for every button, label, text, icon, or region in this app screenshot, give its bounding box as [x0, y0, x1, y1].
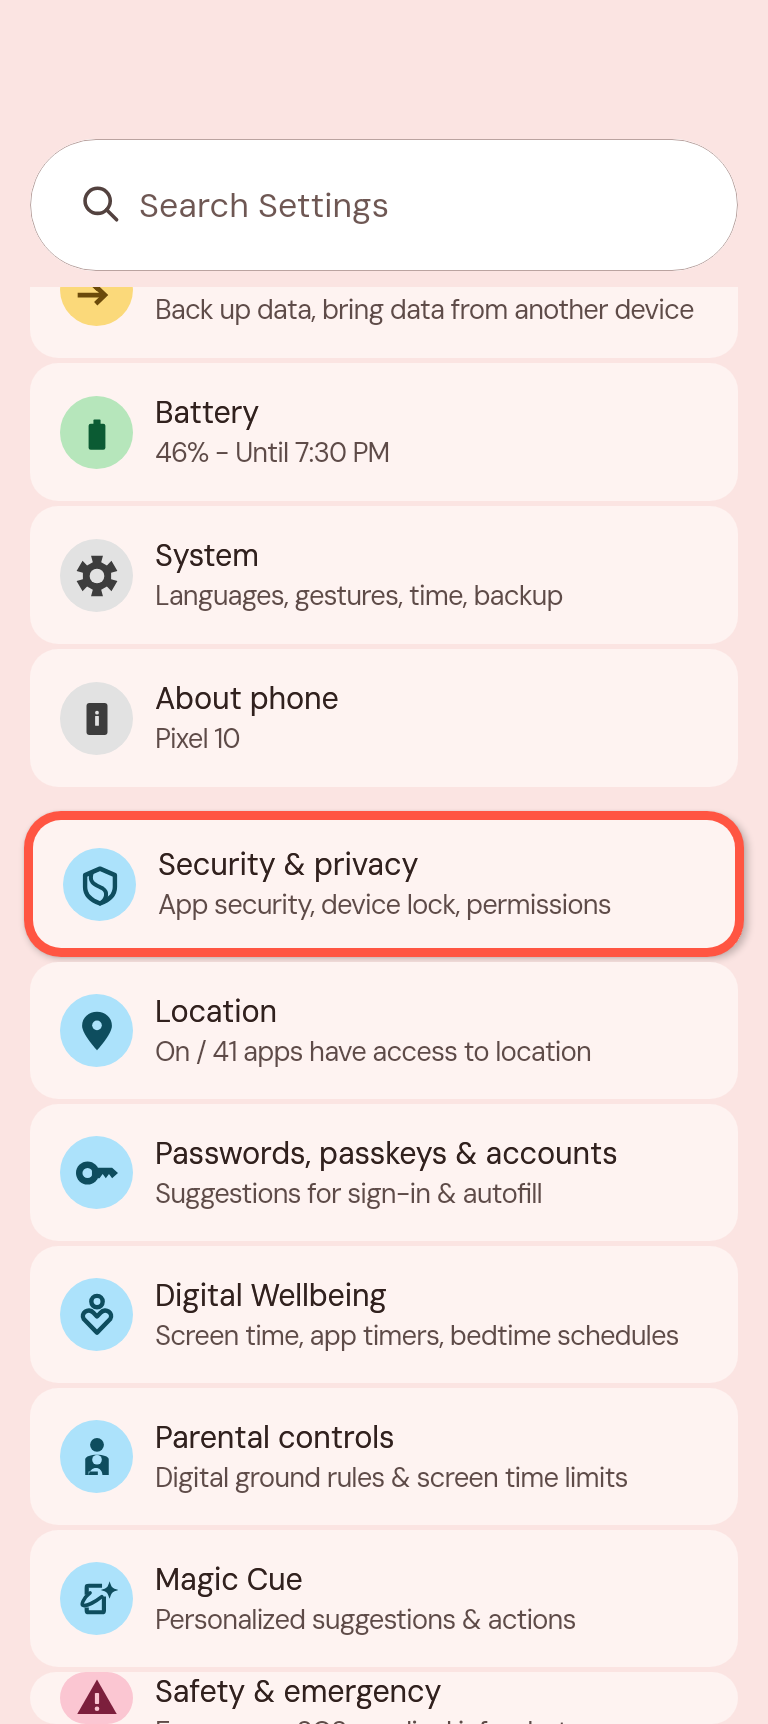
- staticText: Battery: [155, 393, 260, 433]
- staticText: Magic Cue: [155, 1560, 303, 1600]
- button[interactable]: Search Settings: [30, 139, 738, 271]
- staticText: App security, device lock, permissions: [158, 887, 611, 923]
- staticText: About phone: [155, 679, 339, 719]
- staticText: Location: [155, 992, 277, 1032]
- staticText: Backup & transfer: [155, 250, 410, 290]
- staticText: Screen time, app timers, bedtime schedul…: [155, 1318, 679, 1354]
- staticText: On / 41 apps have access to location: [155, 1034, 591, 1070]
- staticText: Suggestions for sign-in & autofill: [155, 1176, 542, 1212]
- staticText: Safety & emergency: [155, 1672, 442, 1712]
- button[interactable]: System: [30, 506, 738, 644]
- button[interactable]: Location: [30, 962, 738, 1099]
- staticText: Parental controls: [155, 1418, 395, 1458]
- staticText: Search Settings: [139, 183, 389, 227]
- staticText: Languages, gestures, time, backup: [155, 578, 563, 614]
- staticText: Magic Cue: [155, 1560, 303, 1600]
- staticText: Security & privacy: [158, 845, 419, 885]
- button[interactable]: Battery: [30, 363, 738, 501]
- staticText: Digital Wellbeing: [155, 1276, 387, 1316]
- staticText: Location: [155, 992, 277, 1032]
- staticText: Passwords, passkeys & accounts: [155, 1134, 618, 1174]
- button[interactable]: Digital Wellbeing: [30, 1246, 738, 1383]
- staticText: System: [155, 536, 259, 576]
- staticText: Back up data, bring data from another de…: [155, 292, 694, 328]
- staticText: 46% - Until 7:30 PM: [155, 435, 390, 471]
- staticText: Security & privacy: [158, 845, 419, 885]
- staticText: Safety & emergency: [155, 1672, 442, 1712]
- staticText: Digital Wellbeing: [155, 1276, 387, 1316]
- button[interactable]: Magic Cue: [30, 1530, 738, 1667]
- staticText: Emergency SOS, medical info, alerts: [155, 1714, 581, 1724]
- staticText: Battery: [155, 393, 260, 433]
- staticText: Backup & transfer: [155, 250, 410, 290]
- button[interactable]: Security & privacy: [33, 820, 735, 948]
- button[interactable]: Safety & emergency: [30, 1672, 738, 1724]
- staticText: Pixel 10: [155, 721, 240, 757]
- staticText: System: [155, 536, 259, 576]
- staticText: About phone: [155, 679, 339, 719]
- button[interactable]: Passwords, passkeys & accounts: [30, 1104, 738, 1241]
- button[interactable]: Backup & transfer: [30, 220, 738, 358]
- staticText: Digital ground rules & screen time limit…: [155, 1460, 628, 1496]
- staticText: Passwords, passkeys & accounts: [155, 1134, 618, 1174]
- button[interactable]: About phone: [30, 649, 738, 787]
- staticText: Parental controls: [155, 1418, 395, 1458]
- button[interactable]: Parental controls: [30, 1388, 738, 1525]
- staticText: Personalized suggestions & actions: [155, 1602, 576, 1638]
